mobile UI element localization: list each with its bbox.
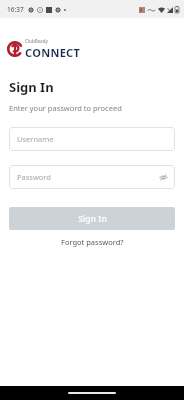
button[interactable]: Show password [157, 171, 169, 183]
staticText: Password [17, 172, 51, 182]
other: Home gesture [68, 392, 116, 394]
button[interactable]: Forgot password? [0, 235, 184, 249]
button[interactable]: Username [9, 127, 175, 151]
staticText: 16:37 [7, 5, 24, 14]
button[interactable]: Password [9, 165, 175, 189]
staticText: Username [17, 134, 54, 144]
staticText: Enter your password to proceed [9, 103, 122, 113]
button[interactable]: Sign In [9, 207, 175, 230]
staticText: Sign In [9, 78, 54, 96]
staticText: CONNECT [25, 45, 81, 60]
staticText: Forgot password? [61, 237, 124, 247]
staticText: ClubReady [25, 38, 48, 44]
staticText: Sign In [78, 213, 107, 225]
